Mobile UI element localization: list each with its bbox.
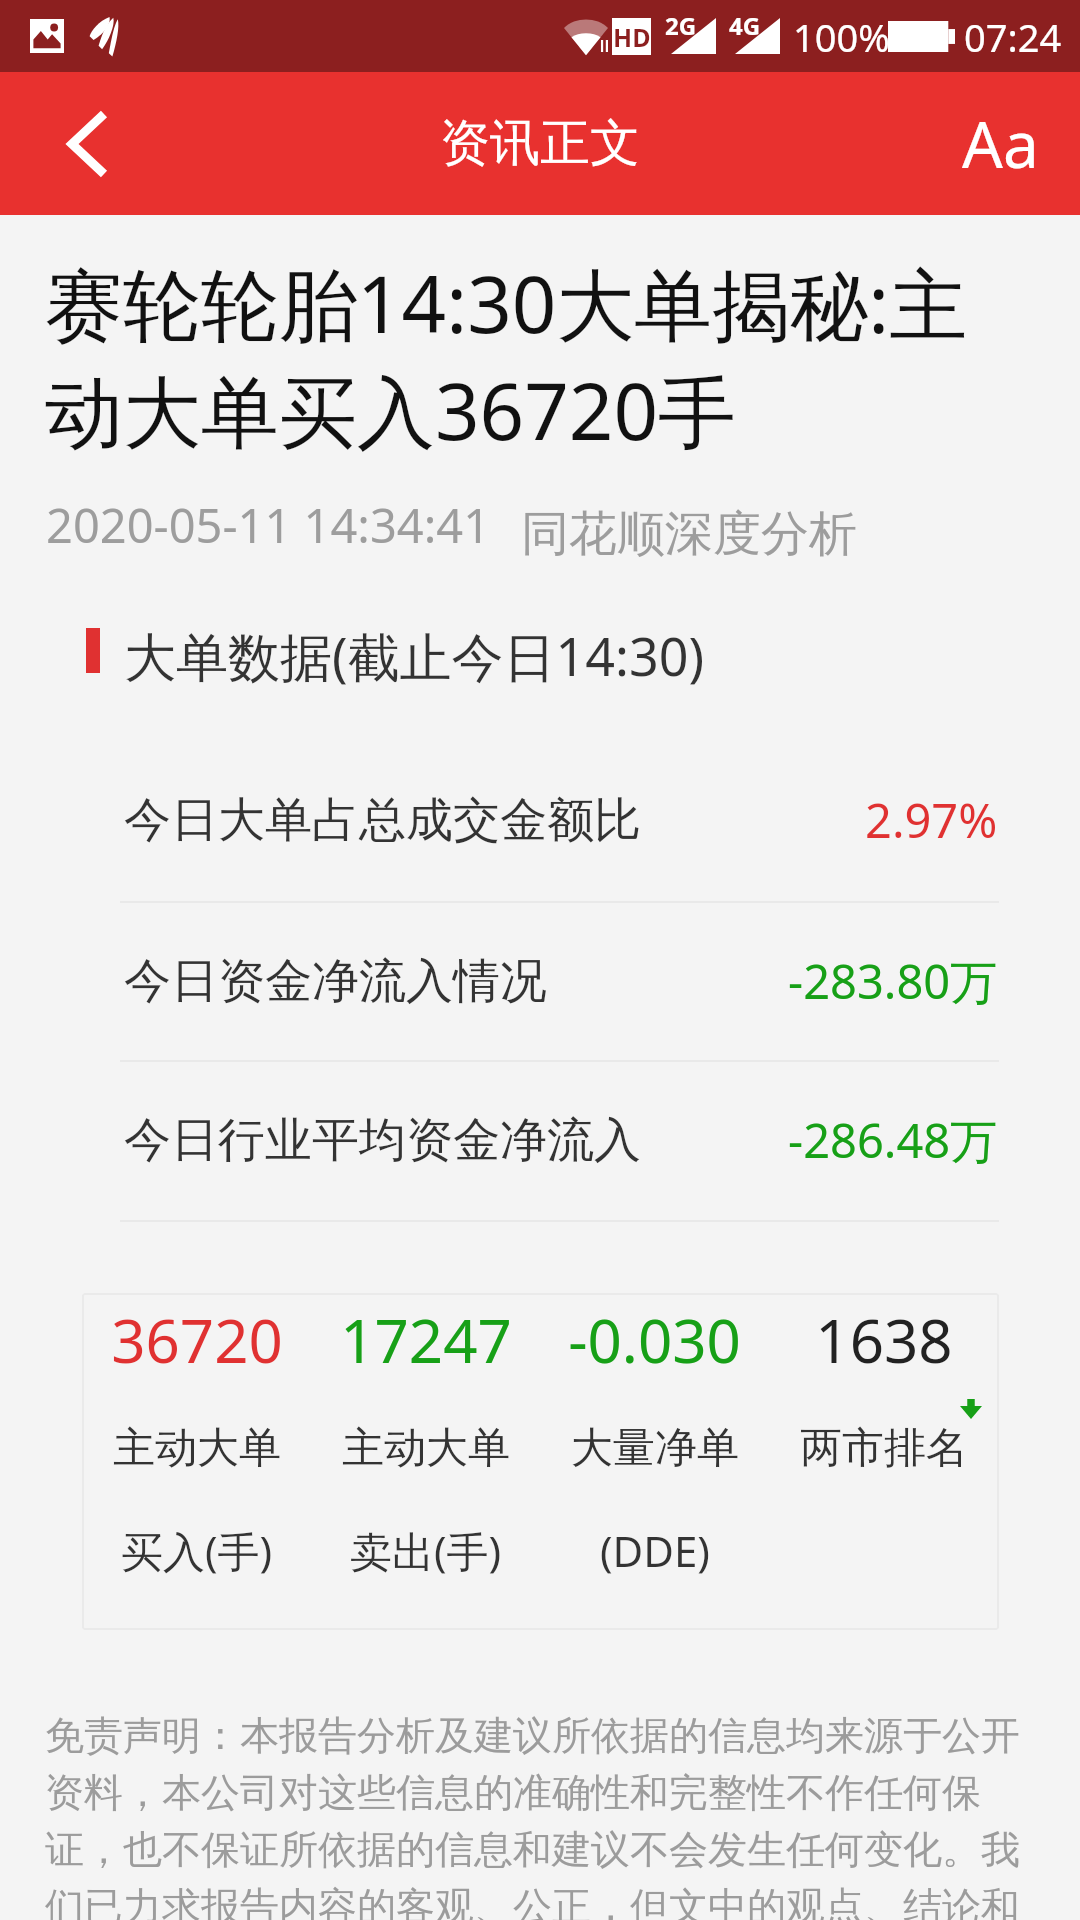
staticText: 免责声明：本报告分析及建议所依据的信息均来源于公开资料，本公司对这些信息的准确性…	[45, 1711, 1045, 1920]
staticText: 2020-05-11 14:34:41	[46, 493, 491, 557]
staticText: 赛轮轮胎14:30大单揭秘:主动大单买入36720手	[45, 250, 1035, 463]
staticText: 今日行业平均资金净流入	[124, 1111, 641, 1170]
staticText: -286.48万	[788, 1108, 998, 1172]
staticText: 36720	[111, 1299, 283, 1381]
staticText: 2.97%	[865, 788, 998, 852]
staticText: 同花顺深度分析	[521, 504, 857, 564]
staticText: 资讯正文	[440, 112, 640, 175]
staticText: 4G	[729, 9, 761, 42]
staticText: 大量净单	[571, 1422, 739, 1475]
button[interactable]: Back	[0, 72, 176, 215]
staticText: 今日大单占总成交金额比	[124, 791, 641, 850]
staticText: Aa	[962, 100, 1039, 187]
button[interactable]: 今日资金净流入情况	[0, 901, 1080, 1061]
staticText: 2G	[665, 9, 697, 42]
staticText: (DDE)	[600, 1522, 710, 1579]
staticText: 07:24	[964, 11, 1062, 63]
button[interactable]: 今日大单占总成交金额比	[0, 740, 1080, 900]
staticText: 买入(手)	[121, 1522, 273, 1579]
staticText: 今日资金净流入情况	[124, 952, 547, 1011]
staticText: HD	[613, 20, 651, 54]
staticText: 17247	[340, 1299, 512, 1381]
button[interactable]: Font size	[920, 72, 1080, 215]
staticText: 大单数据(截止今日14:30)	[124, 620, 705, 691]
staticText: 主动大单	[113, 1422, 281, 1475]
staticText: -283.80万	[788, 949, 998, 1013]
staticText: 100%	[793, 11, 890, 63]
staticText: 两市排名	[800, 1422, 968, 1475]
button[interactable]: 今日行业平均资金净流入	[0, 1060, 1080, 1220]
staticText: 卖出(手)	[350, 1522, 502, 1579]
staticText: 主动大单	[342, 1422, 510, 1475]
staticText: -0.030	[568, 1299, 741, 1381]
staticText: 1638	[815, 1299, 953, 1381]
